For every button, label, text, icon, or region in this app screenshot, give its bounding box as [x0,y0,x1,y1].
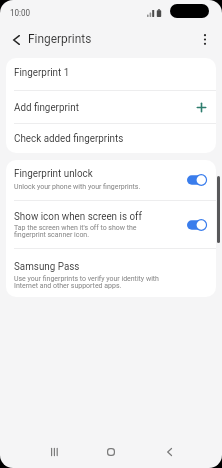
button[interactable]: Add fingerprint [6,91,216,123]
staticText: Add fingerprint [14,101,79,114]
button[interactable]: Samsung Pass [6,249,216,297]
staticText: 10:00 [10,8,31,18]
button[interactable] [74,436,148,468]
button[interactable]: Show icon when screen is off [6,201,216,248]
staticText: Use your fingerprints to verify your ide… [14,274,159,290]
button[interactable] [0,436,74,468]
staticText: Check added fingerprints [14,132,124,145]
button[interactable] [148,436,222,468]
staticText: Fingerprint unlock [14,167,93,180]
staticText: Tap the screen when it's off to show the… [14,223,137,239]
staticText: Show icon when screen is off [14,210,142,223]
button[interactable] [4,28,28,52]
staticText: Fingerprints [28,31,91,47]
staticText: Fingerprint 1 [14,66,69,79]
button[interactable]: Fingerprint unlock [6,160,216,200]
staticText: Unlock your phone with your fingerprints… [14,182,141,190]
staticText: Samsung Pass [14,260,80,273]
button[interactable]: Fingerprint 1 [6,58,216,90]
button[interactable]: Check added fingerprints [6,124,216,153]
button[interactable] [193,27,217,51]
